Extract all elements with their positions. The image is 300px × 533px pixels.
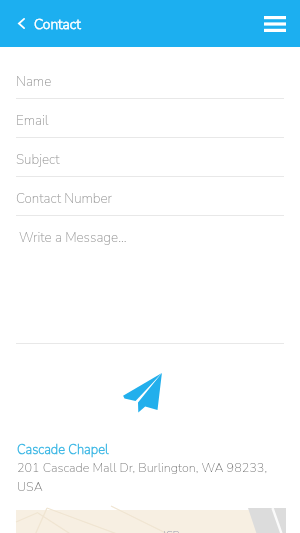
staticText: JCPenney <box>163 528 206 533</box>
button[interactable]: Back <box>6 11 36 36</box>
button[interactable]: Map <box>16 510 284 533</box>
staticText: 201 Cascade Mall Dr, Burlington, WA 9823… <box>17 459 285 496</box>
button[interactable]: Name <box>16 47 284 99</box>
staticText: Contact <box>34 15 81 34</box>
button[interactable]: Email <box>16 99 284 138</box>
button[interactable]: Subject <box>16 138 284 177</box>
staticText: Email <box>16 111 49 129</box>
button[interactable]: Write a Message... <box>16 216 284 344</box>
staticText: Subject <box>16 150 60 168</box>
staticText: Write a Message... <box>19 228 127 246</box>
button[interactable]: Cascade Chapel <box>17 441 109 459</box>
staticText: Contact Number <box>16 189 112 207</box>
button[interactable]: Menu <box>253 8 297 39</box>
button[interactable]: Contact Number <box>16 177 284 216</box>
button[interactable]: Send <box>16 344 284 441</box>
staticText: Name <box>16 72 52 90</box>
